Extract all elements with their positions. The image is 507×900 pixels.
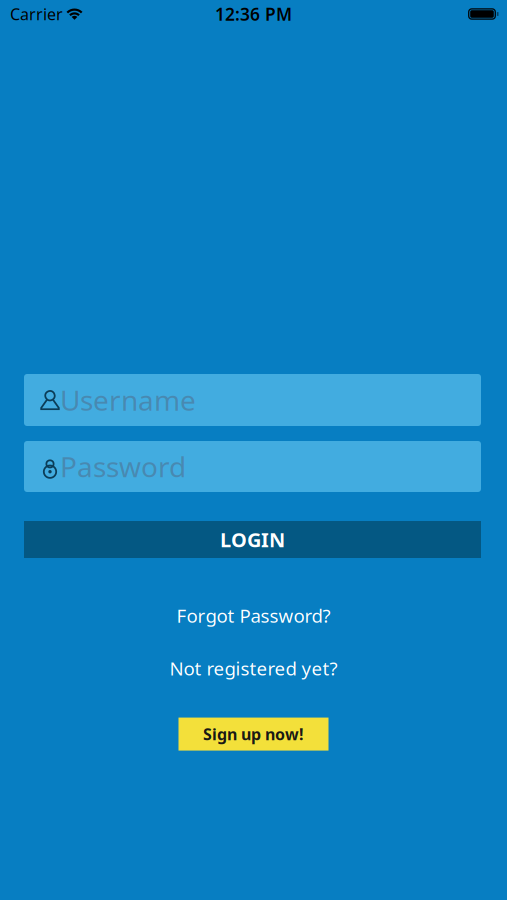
staticText: Username	[60, 381, 196, 419]
button[interactable]: Username	[24, 374, 481, 426]
staticText: Carrier	[10, 3, 63, 25]
button[interactable]: Sign up now!	[178, 718, 328, 751]
button[interactable]: Forgot Password?	[176, 603, 330, 628]
button[interactable]: LOGIN	[24, 521, 481, 558]
button[interactable]: Password	[24, 441, 481, 492]
staticText: Forgot Password?	[176, 603, 330, 628]
staticText: Password	[60, 448, 186, 485]
staticText: LOGIN	[220, 526, 285, 553]
staticText: 12:36 PM	[215, 2, 292, 25]
staticText: Not registered yet?	[169, 656, 337, 681]
staticText: Sign up now!	[203, 723, 304, 745]
